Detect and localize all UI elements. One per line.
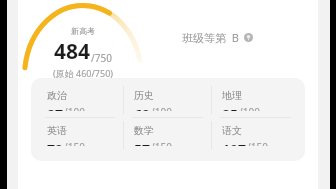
staticText: 新高考 bbox=[71, 26, 95, 36]
staticText: /150 bbox=[64, 140, 85, 146]
button[interactable]: 班级等第 B bbox=[182, 30, 253, 45]
staticText: /100 bbox=[151, 105, 172, 111]
staticText: 班级等第 B bbox=[182, 30, 239, 45]
staticText: /100 bbox=[239, 105, 260, 111]
staticText: 87 bbox=[47, 105, 64, 111]
staticText: /150 bbox=[151, 140, 172, 146]
staticText: 政治 bbox=[47, 89, 67, 102]
staticText: /150 bbox=[247, 140, 268, 146]
staticText: 107 bbox=[222, 140, 247, 146]
staticText: 79 bbox=[47, 140, 64, 146]
button[interactable]: 地理 bbox=[212, 83, 299, 117]
staticText: 历史 bbox=[134, 89, 154, 102]
button[interactable]: 政治 bbox=[37, 83, 123, 117]
staticText: 484 bbox=[54, 37, 91, 66]
button[interactable]: 语文 bbox=[212, 118, 299, 152]
staticText: (原始 460/750) bbox=[53, 67, 113, 79]
staticText: 地理 bbox=[222, 89, 242, 102]
staticText: 57 bbox=[134, 140, 151, 146]
button[interactable]: 数学 bbox=[124, 118, 211, 152]
staticText: 69 bbox=[134, 105, 151, 111]
button[interactable]: 历史 bbox=[124, 83, 211, 117]
staticText: 85 bbox=[222, 105, 239, 111]
button[interactable]: 帮助说明 bbox=[244, 33, 253, 42]
staticText: /100 bbox=[64, 105, 85, 111]
staticText: 英语 bbox=[47, 124, 67, 137]
staticText: 数学 bbox=[134, 124, 154, 137]
staticText: 语文 bbox=[222, 124, 242, 137]
button[interactable]: 英语 bbox=[37, 118, 123, 152]
staticText: /750 bbox=[91, 51, 112, 65]
